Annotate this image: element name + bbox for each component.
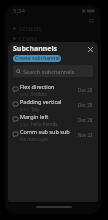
staticText: COMM — [19, 35, 37, 42]
staticText: GENESIS — [19, 25, 42, 32]
staticText: Margin left — [20, 113, 49, 120]
button[interactable]: GENESIS — [5, 24, 101, 32]
button[interactable]: Close — [86, 45, 95, 54]
staticText: Flex direction — [20, 83, 55, 90]
staticText: Dec 28 — [78, 102, 93, 108]
staticText: Dec 28 — [78, 117, 93, 123]
staticText: you: — [20, 121, 31, 127]
staticText: hello friends — [31, 121, 58, 127]
button[interactable]: Menu — [87, 17, 96, 24]
button[interactable]: Flex direction — [8, 82, 98, 97]
button[interactable]: Margin left — [8, 112, 98, 127]
staticText: Tao — [31, 106, 39, 112]
button[interactable]: Comm sub sub sub — [8, 127, 98, 142]
staticText: Subchannels — [13, 44, 58, 54]
button[interactable]: COMM — [5, 34, 101, 42]
staticText: Dec 28 — [78, 87, 93, 93]
staticText: Comm sub sub sub — [20, 128, 70, 135]
button[interactable]: Search subchannels — [13, 65, 93, 77]
staticText: Scribbo — [31, 91, 47, 97]
staticText: Nov 22 — [78, 132, 93, 138]
staticText: Create subchannel — [15, 55, 60, 62]
staticText: No messages — [20, 136, 49, 142]
staticText: Search subchannels — [23, 68, 75, 75]
staticText: you: — [20, 106, 31, 112]
staticText: 5:34 — [13, 7, 25, 15]
staticText: Padding vertical — [20, 98, 62, 105]
button[interactable]: Create subchannel — [13, 55, 61, 62]
staticText: you: — [20, 91, 31, 97]
button[interactable]: Padding vertical — [8, 97, 98, 112]
